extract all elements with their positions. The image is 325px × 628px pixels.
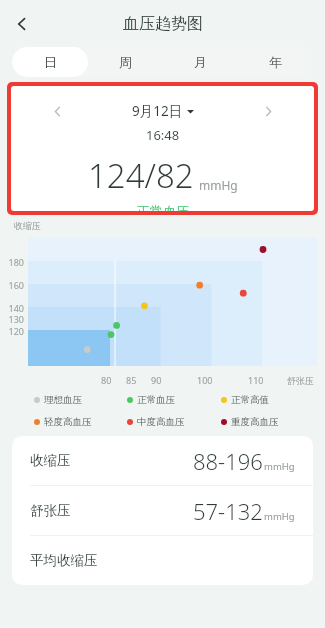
button[interactable]: Next day bbox=[256, 99, 280, 123]
button[interactable]: 平均收缩压 bbox=[12, 536, 313, 585]
button[interactable]: 舒张压 bbox=[12, 486, 313, 535]
staticText: 9月12日 bbox=[132, 102, 183, 120]
staticText: 120 bbox=[2, 325, 24, 337]
staticText: 100 bbox=[197, 374, 213, 386]
staticText: 舒张压 bbox=[287, 375, 314, 386]
staticText: 日 bbox=[44, 54, 57, 70]
staticText: 130 bbox=[2, 313, 24, 325]
staticText: 90 bbox=[151, 374, 162, 386]
staticText: 周 bbox=[119, 54, 132, 70]
staticText: 正常血压 bbox=[137, 394, 175, 406]
staticText: 月 bbox=[194, 54, 207, 70]
staticText: 16:48 bbox=[146, 126, 180, 144]
staticText: 正常血压 bbox=[137, 203, 189, 211]
button[interactable]: 日 bbox=[12, 47, 88, 77]
staticText: 正常高值 bbox=[231, 394, 269, 406]
button[interactable]: 月 bbox=[163, 47, 238, 77]
staticText: 180 bbox=[2, 256, 24, 268]
staticText: 中度高血压 bbox=[137, 416, 185, 428]
staticText: mmHg bbox=[264, 460, 295, 473]
staticText: 重度高血压 bbox=[231, 416, 279, 428]
button[interactable]: 收缩压 bbox=[12, 436, 313, 485]
staticText: 轻度高血压 bbox=[44, 416, 92, 428]
staticText: 年 bbox=[269, 54, 282, 70]
button[interactable]: Back bbox=[4, 6, 40, 42]
staticText: 110 bbox=[248, 374, 264, 386]
staticText: 140 bbox=[2, 302, 24, 314]
staticText: 血压趋势图 bbox=[123, 14, 203, 34]
button[interactable]: 年 bbox=[238, 47, 313, 77]
staticText: 收缩压 bbox=[14, 220, 41, 231]
staticText: 理想血压 bbox=[44, 394, 82, 406]
staticText: 124/82 bbox=[88, 153, 194, 198]
staticText: 57-132 bbox=[193, 496, 263, 526]
staticText: 80 bbox=[101, 374, 112, 386]
staticText: mmHg bbox=[199, 177, 238, 193]
staticText: 88-196 bbox=[193, 446, 263, 476]
button[interactable]: Previous day bbox=[45, 99, 69, 123]
staticText: mmHg bbox=[264, 510, 295, 523]
staticText: 85 bbox=[126, 374, 137, 386]
staticText: 收缩压 bbox=[30, 452, 71, 469]
button[interactable]: 周 bbox=[88, 47, 163, 77]
staticText: 160 bbox=[2, 279, 24, 291]
staticText: 舒张压 bbox=[30, 502, 71, 519]
staticText: 平均收缩压 bbox=[30, 552, 98, 569]
